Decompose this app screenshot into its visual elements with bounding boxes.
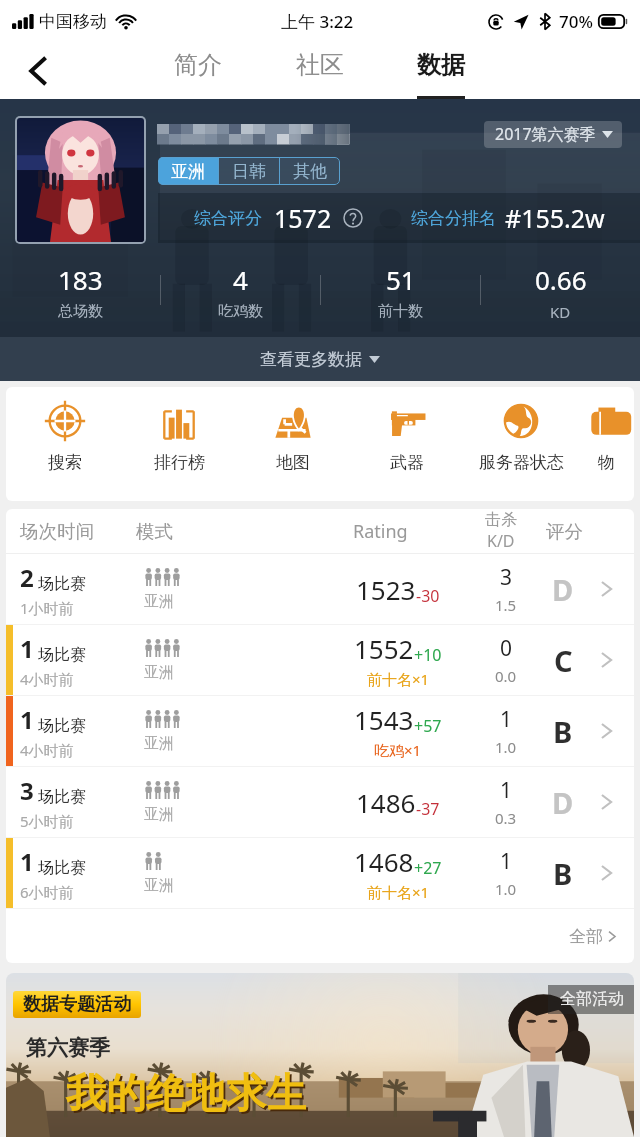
button[interactable]: 简介 — [170, 42, 226, 99]
staticText: 服务器状态 — [479, 452, 564, 473]
staticText: 亚洲 — [144, 876, 174, 895]
staticText: 场次时间 — [20, 520, 94, 543]
staticText: 1 — [20, 703, 34, 736]
button[interactable]: 日韩 — [219, 157, 279, 185]
button[interactable]: 亚洲 — [158, 157, 218, 185]
staticText: 前十名×1 — [367, 882, 430, 902]
button[interactable]: 数据专题活动 — [13, 991, 141, 1018]
staticText: 评分 — [546, 520, 583, 543]
staticText: 1.0 — [495, 879, 517, 899]
staticText: 1 — [500, 776, 513, 805]
staticText: 4 — [233, 262, 248, 297]
staticText: #155.2w — [505, 201, 605, 235]
staticText: 1572 — [274, 201, 332, 235]
staticText: 前十名×1 — [367, 669, 430, 689]
staticText: 总场数 — [58, 302, 103, 321]
staticText: 6小时前 — [20, 882, 74, 902]
staticText: 社区 — [296, 50, 344, 80]
staticText: 全部 — [569, 926, 603, 947]
staticText: 场比赛 — [38, 716, 86, 736]
staticText: 亚洲 — [144, 592, 174, 611]
staticText: 1 — [20, 845, 34, 878]
button[interactable]: 数据 — [413, 42, 469, 99]
button[interactable]: 1 — [6, 696, 634, 766]
staticText: B — [553, 854, 573, 893]
button[interactable]: 服务器状态 — [464, 400, 578, 473]
staticText: C — [554, 641, 573, 680]
staticText: 51 — [386, 262, 416, 297]
button[interactable]: 排行榜 — [122, 400, 236, 473]
staticText: 1 — [500, 847, 513, 876]
staticText: 场比赛 — [38, 574, 86, 594]
staticText: 1543 — [354, 702, 414, 737]
staticText: 1 — [500, 705, 513, 734]
button[interactable]: 1 — [6, 838, 634, 908]
button[interactable]: 数据专题活动 — [6, 973, 634, 1137]
staticText: 数据专题活动 — [23, 993, 131, 1016]
staticText: +57 — [414, 715, 442, 737]
staticText: 场比赛 — [38, 645, 86, 665]
staticText: Rating — [353, 519, 408, 544]
staticText: 70% — [559, 10, 593, 33]
staticText: 物 — [598, 452, 615, 473]
staticText: 模式 — [136, 520, 173, 543]
staticText: +10 — [414, 644, 442, 666]
staticText: 0.3 — [495, 808, 517, 828]
staticText: 日韩 — [232, 161, 266, 182]
button[interactable]: 武器 — [350, 400, 464, 473]
staticText: 4小时前 — [20, 740, 74, 760]
staticText: 5小时前 — [20, 811, 74, 831]
button[interactable]: 其他 — [280, 157, 340, 185]
staticText: 1 — [20, 632, 34, 665]
button[interactable]: 社区 — [292, 42, 348, 99]
button[interactable]: 1 — [6, 625, 634, 695]
staticText: 场比赛 — [38, 787, 86, 807]
staticText: 排行榜 — [154, 452, 205, 473]
staticText: 亚洲 — [171, 161, 205, 182]
staticText: 1.5 — [495, 595, 517, 615]
button[interactable]: 地图 — [236, 400, 350, 473]
staticText: 3 — [20, 774, 34, 807]
staticText: 183 — [58, 262, 103, 297]
button[interactable]: 2017第六赛季 — [484, 121, 622, 148]
staticText: 数据 — [417, 50, 465, 80]
button[interactable]: 2 — [6, 554, 634, 624]
staticText: 前十数 — [378, 302, 423, 321]
staticText: 综合分排名 — [411, 208, 496, 229]
staticText: 武器 — [390, 452, 424, 473]
button[interactable]: Back — [12, 45, 64, 97]
staticText: 吃鸡×1 — [374, 740, 422, 760]
staticText: 3 — [500, 563, 513, 592]
staticText: 中国移动 — [39, 11, 107, 32]
staticText: 1523 — [356, 572, 416, 607]
button[interactable]: 物 — [578, 400, 634, 473]
staticText: 查看更多数据 — [260, 349, 362, 370]
staticText: 地图 — [276, 452, 310, 473]
button[interactable]: 全部 — [6, 909, 634, 963]
staticText: 1486 — [356, 785, 416, 820]
staticText: 4小时前 — [20, 669, 74, 689]
staticText: 我的绝地求生 — [66, 1068, 306, 1118]
staticText: 0 — [500, 634, 513, 663]
staticText: 搜索 — [48, 452, 82, 473]
button[interactable]: 全部活动 — [548, 985, 634, 1014]
button[interactable]: 查看更多数据 — [0, 337, 640, 381]
staticText: 综合评分 — [194, 208, 262, 229]
staticText: 1.0 — [495, 737, 517, 757]
staticText: 击杀 — [485, 510, 517, 530]
staticText: 全部活动 — [560, 989, 624, 1009]
staticText: 1小时前 — [20, 598, 74, 618]
button[interactable]: 3 — [6, 767, 634, 837]
staticText: 亚洲 — [144, 663, 174, 682]
staticText: 简介 — [174, 50, 222, 80]
staticText: 2017第六赛季 — [495, 123, 596, 145]
staticText: K/D — [487, 530, 515, 552]
staticText: KD — [550, 302, 571, 322]
staticText: D — [552, 570, 574, 609]
button[interactable]: 搜索 — [8, 400, 122, 473]
staticText: 吃鸡数 — [218, 302, 263, 321]
staticText: 0.0 — [495, 666, 517, 686]
staticText: 我的绝地求生 — [68, 1070, 308, 1120]
staticText: 2 — [20, 561, 34, 594]
button[interactable]: Avatar — [17, 118, 144, 242]
